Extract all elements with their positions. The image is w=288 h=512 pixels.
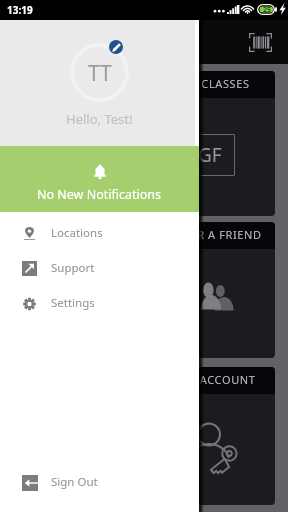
staticText: REFER A FRIEND [170, 227, 262, 242]
staticText: GROUP FITNESS CLASSES [107, 76, 250, 91]
button[interactable]: No New Notifications [0, 146, 199, 212]
button[interactable]: Settings [0, 286, 199, 321]
staticText: 13:19 [7, 3, 33, 17]
staticText: Hello, Test! [66, 110, 133, 128]
staticText: 25 [263, 5, 272, 15]
staticText: Locations [51, 225, 103, 241]
staticText: Sign Out [51, 474, 98, 490]
staticText: TT [88, 59, 112, 88]
button[interactable]: Locations [0, 216, 199, 251]
button[interactable]: Edit profile [109, 40, 123, 54]
button[interactable]: MY ACCOUNT [13, 367, 275, 505]
button[interactable]: Support [0, 251, 199, 286]
button[interactable]: Sign Out [0, 465, 199, 500]
staticText: Support [51, 260, 95, 276]
button[interactable]: Scan barcode [245, 29, 275, 55]
staticText: GF [198, 142, 222, 168]
staticText: No New Notifications [37, 186, 162, 203]
button[interactable]: REFER A FRIEND [13, 222, 275, 358]
staticText: Settings [51, 295, 95, 311]
staticText: MY ACCOUNT [179, 372, 256, 387]
button[interactable]: GROUP FITNESS CLASSES [13, 71, 275, 216]
